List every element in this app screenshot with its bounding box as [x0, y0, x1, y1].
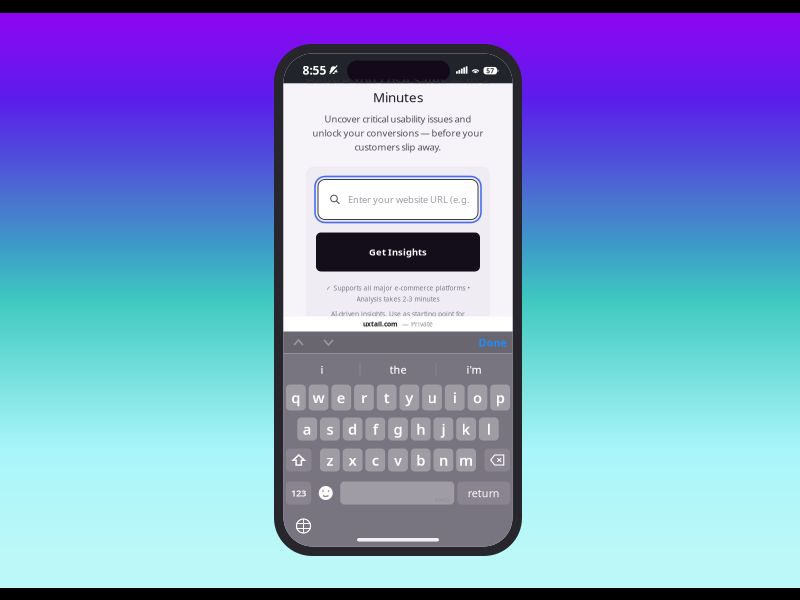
- button[interactable]: return: [457, 481, 510, 504]
- staticText: y: [405, 388, 413, 407]
- staticText: Get Insights: [369, 246, 427, 258]
- staticText: i: [453, 388, 457, 407]
- staticText: the: [389, 362, 406, 377]
- staticText: i: [320, 362, 323, 377]
- staticText: b: [416, 450, 425, 470]
- staticText: z: [326, 450, 333, 470]
- staticText: t: [384, 388, 390, 407]
- staticText: k: [462, 419, 471, 439]
- staticText: i'm: [466, 362, 481, 377]
- button[interactable]: y: [399, 384, 419, 410]
- button[interactable]: Previous field: [283, 331, 313, 353]
- staticText: return: [468, 486, 500, 500]
- button[interactable]: 123: [286, 481, 311, 504]
- button[interactable]: Next field: [313, 331, 343, 353]
- button[interactable]: Shift: [286, 448, 311, 471]
- staticText: h: [416, 419, 425, 439]
- staticText: 8:55: [302, 62, 326, 78]
- button[interactable]: e: [331, 384, 351, 410]
- staticText: 57: [486, 66, 494, 75]
- staticText: l: [487, 419, 491, 439]
- staticText: Minutes: [373, 88, 423, 106]
- button[interactable]: x: [343, 448, 362, 471]
- staticText: n: [439, 450, 448, 470]
- button[interactable]: v: [388, 448, 408, 471]
- button[interactable]: m: [456, 448, 476, 471]
- staticText: f: [373, 419, 378, 439]
- button[interactable]: h: [411, 417, 431, 440]
- button[interactable]: Delete: [484, 448, 510, 471]
- staticText: EN ES: [435, 496, 449, 503]
- staticText: v: [394, 450, 402, 470]
- staticText: unlock your conversions — before your: [312, 127, 483, 139]
- staticText: Uncover critical usability issues and: [324, 113, 471, 125]
- staticText: s: [326, 419, 333, 439]
- staticText: Done: [478, 335, 506, 350]
- button[interactable]: o: [467, 384, 487, 410]
- button[interactable]: uxtail.com: [283, 316, 512, 331]
- staticText: Enter your website URL (e.g.: [348, 193, 470, 206]
- staticText: e: [337, 388, 346, 407]
- staticText: j: [441, 419, 445, 439]
- button[interactable]: l: [479, 417, 499, 440]
- staticText: q: [291, 388, 300, 407]
- button[interactable]: r: [354, 384, 374, 410]
- button[interactable]: Get Insights: [316, 232, 480, 271]
- staticText: Before You Lose Sales — in 2: [306, 71, 490, 88]
- staticText: p: [496, 388, 505, 407]
- button[interactable]: j: [433, 417, 453, 440]
- button[interactable]: c: [365, 448, 385, 471]
- button[interactable]: z: [320, 448, 340, 471]
- staticText: customers slip away.: [354, 141, 441, 153]
- staticText: r: [361, 388, 367, 407]
- button[interactable]: i'm: [436, 356, 511, 382]
- staticText: d: [348, 419, 357, 439]
- staticText: g: [393, 419, 402, 439]
- staticText: 123: [291, 487, 306, 499]
- button[interactable]: f: [365, 417, 385, 440]
- staticText: your own analysis.: [369, 321, 427, 329]
- button[interactable]: s: [320, 417, 340, 440]
- button[interactable]: d: [343, 417, 362, 440]
- button[interactable]: i: [445, 384, 465, 410]
- staticText: w: [312, 388, 324, 407]
- button[interactable]: t: [377, 384, 397, 410]
- button[interactable]: i: [284, 356, 359, 382]
- staticText: x: [349, 450, 357, 470]
- staticText: a: [303, 419, 312, 439]
- staticText: — Private: [402, 320, 433, 328]
- button[interactable]: Enter your website URL (e.g.: [315, 176, 481, 222]
- button[interactable]: the: [360, 356, 435, 382]
- staticText: ✓ Supports all major e-commerce platform…: [325, 284, 470, 292]
- button[interactable]: w: [309, 384, 328, 410]
- button[interactable]: a: [297, 417, 317, 440]
- button[interactable]: g: [388, 417, 408, 440]
- button[interactable]: Emoji: [314, 481, 337, 504]
- staticText: u: [427, 388, 436, 407]
- button[interactable]: k: [456, 417, 476, 440]
- button[interactable]: b: [411, 448, 431, 471]
- staticText: uxtail.com: [363, 320, 398, 328]
- button[interactable]: u: [422, 384, 442, 410]
- staticText: AI-driven insights. Use as starting poin…: [331, 310, 465, 318]
- button[interactable]: q: [286, 384, 306, 410]
- staticText: Analysis takes 2-3 minutes: [356, 295, 439, 303]
- staticText: m: [459, 450, 473, 470]
- button[interactable]: Done: [478, 331, 512, 353]
- staticText: o: [473, 388, 482, 407]
- staticText: c: [372, 450, 379, 470]
- button[interactable]: Switch keyboard: [291, 517, 315, 534]
- button[interactable]: n: [433, 448, 453, 471]
- button[interactable]: p: [490, 384, 510, 410]
